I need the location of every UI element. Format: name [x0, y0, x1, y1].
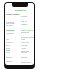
- staticText: Payment method: [21, 36, 34, 38]
- staticText: GREENLEAF: [15, 9, 26, 12]
- staticText: Amount: [21, 44, 28, 46]
- staticText: Standard: [6, 32, 14, 34]
- staticText: Customer: [6, 21, 15, 23]
- staticText: Ship to: [21, 20, 27, 22]
- staticText: Card: [21, 38, 25, 40]
- staticText: greenleaf.co: [21, 61, 32, 63]
- staticText: Qty: [6, 38, 9, 40]
- staticText: Total: [6, 47, 11, 49]
- staticText: Fresh produce: [21, 29, 34, 31]
- staticText: Invoice: [21, 15, 28, 17]
- staticText: Jane Miller: [6, 22, 15, 24]
- staticText: Shipping: [6, 29, 15, 32]
- staticText: delivered: [21, 31, 29, 33]
- staticText: Summary: [21, 41, 30, 43]
- staticText: Signed: [21, 51, 27, 53]
- staticText: Contact: [21, 56, 28, 58]
- staticText: Notes: [21, 47, 26, 49]
- staticText: Kale: [6, 44, 10, 46]
- staticText: Visa: [6, 51, 10, 53]
- staticText: Paid: [6, 49, 11, 52]
- staticText: Thanks: [6, 60, 13, 62]
- staticText: Oregon: [21, 23, 28, 25]
- staticText: Product: [6, 41, 13, 43]
- staticText: Order details: [6, 13, 20, 16]
- staticText: Delivered: [21, 50, 30, 52]
- staticText: Support: [6, 56, 13, 58]
- staticText: Portland: [6, 24, 14, 26]
